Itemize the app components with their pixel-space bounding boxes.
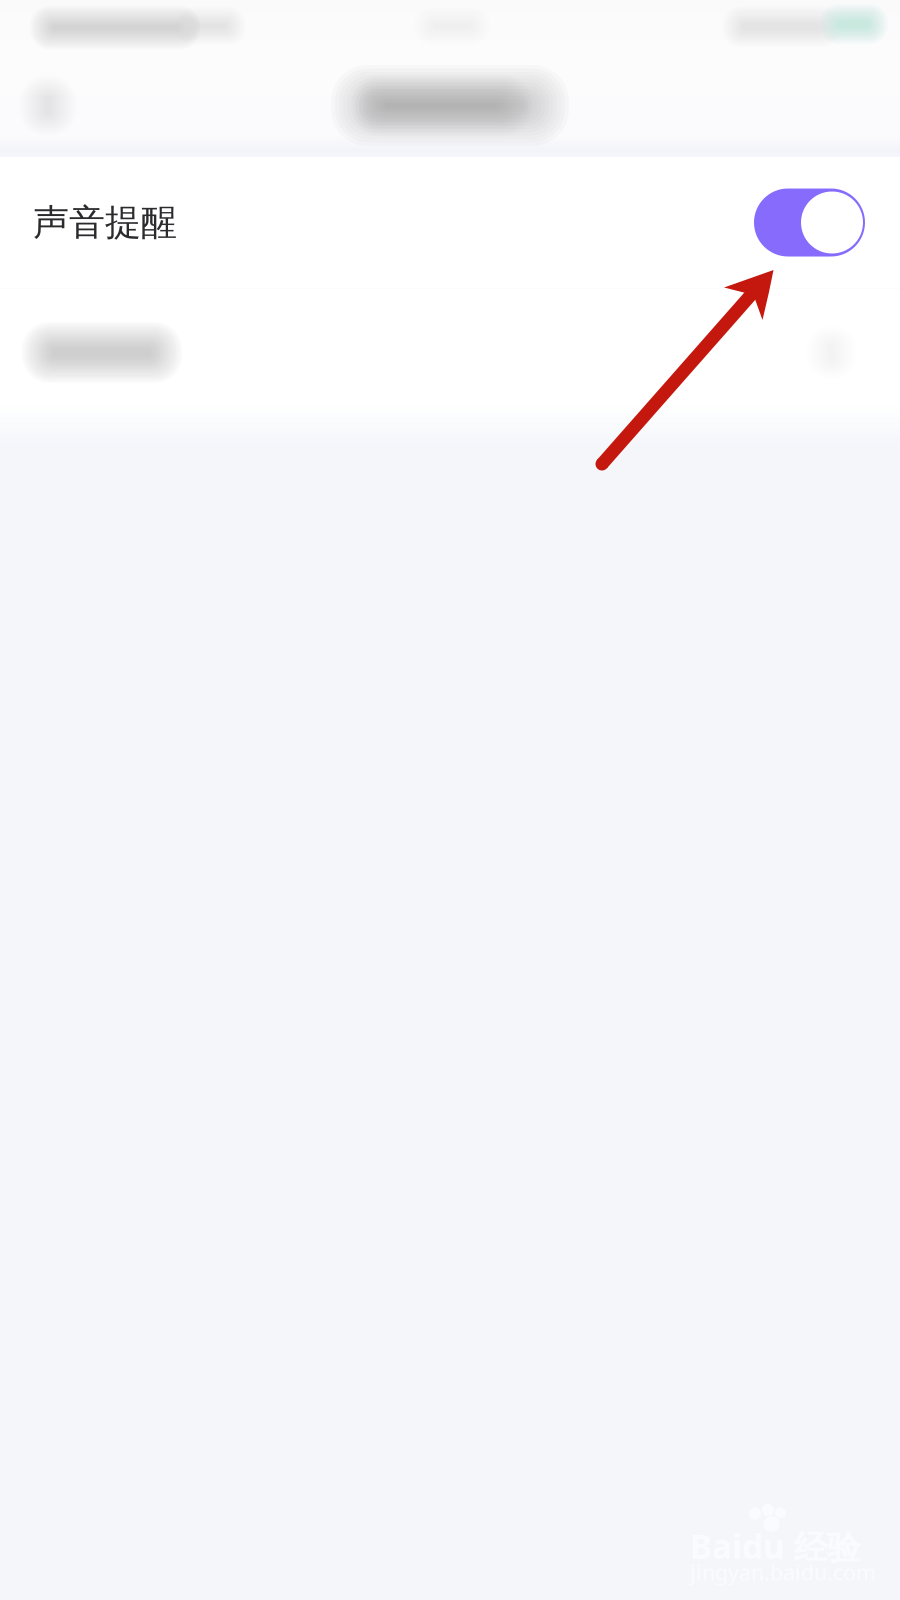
- button[interactable]: 设置项: [0, 289, 900, 416]
- staticText: 声音提醒: [33, 200, 177, 245]
- button[interactable]: 返回: [2, 59, 94, 151]
- button[interactable]: 声音提醒: [0, 157, 900, 288]
